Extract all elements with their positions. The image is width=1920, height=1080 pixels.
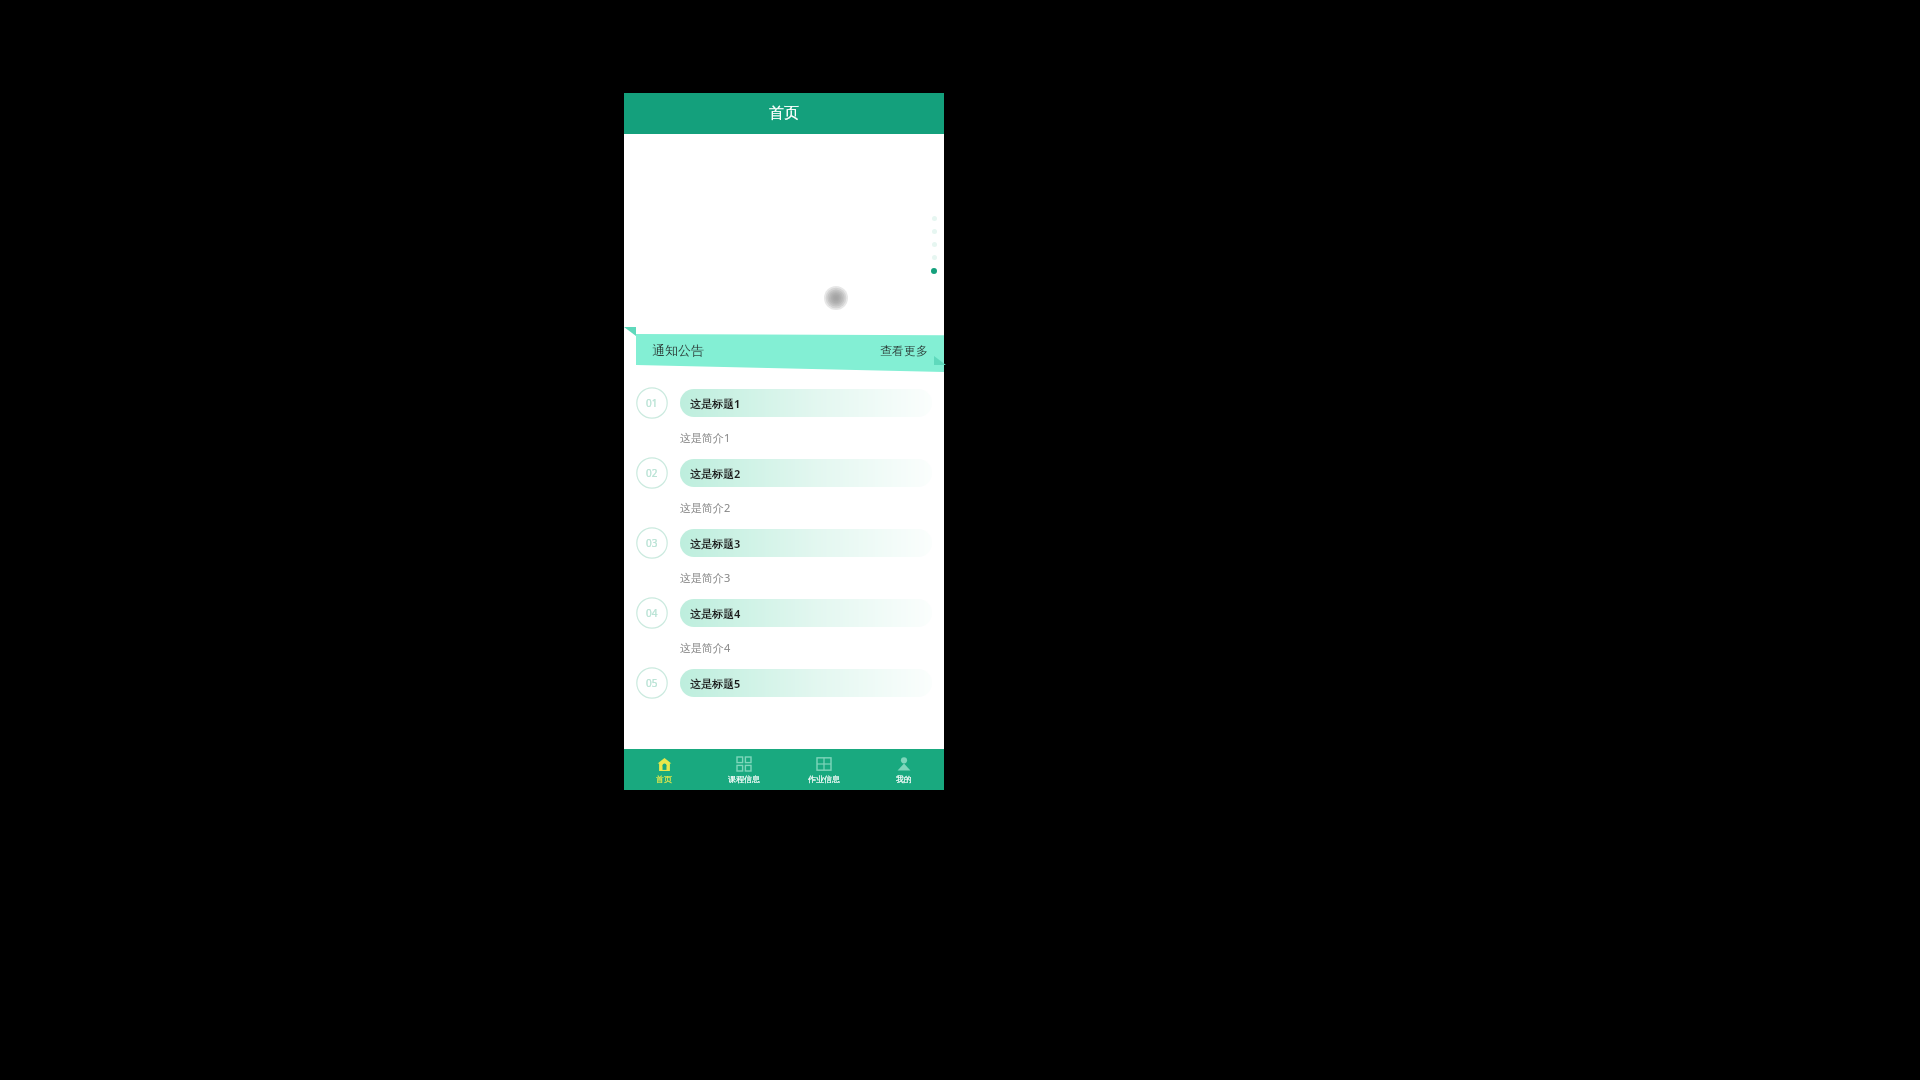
staticText: 03: [646, 536, 658, 550]
button[interactable]: 课程信息: [704, 749, 784, 790]
staticText: 02: [646, 466, 658, 480]
button[interactable]: 我的: [864, 749, 944, 790]
button[interactable]: 04: [624, 597, 944, 667]
staticText: 这是简介1: [680, 430, 731, 445]
staticText: 首页: [769, 104, 799, 123]
staticText: 这是标题1: [690, 396, 741, 411]
button[interactable]: 05: [624, 667, 944, 699]
staticText: 这是标题4: [690, 606, 741, 621]
staticText: 我的: [896, 774, 912, 784]
button[interactable]: 作业信息: [784, 749, 864, 790]
staticText: 这是标题3: [690, 536, 741, 551]
button[interactable]: 02: [624, 457, 944, 527]
staticText: 这是简介3: [680, 570, 731, 585]
staticText: 04: [646, 606, 658, 620]
button[interactable]: 查看更多: [880, 343, 928, 358]
staticText: 这是标题5: [690, 676, 741, 691]
staticText: 01: [646, 396, 658, 410]
button[interactable]: 通知公告: [624, 327, 944, 373]
button[interactable]: 03: [624, 527, 944, 597]
staticText: 这是标题2: [690, 466, 741, 481]
staticText: 课程信息: [728, 774, 760, 784]
button[interactable]: 01: [624, 387, 944, 457]
staticText: 查看更多: [880, 343, 928, 358]
staticText: 这是简介2: [680, 500, 731, 515]
staticText: 05: [646, 676, 658, 690]
staticText: 首页: [656, 774, 672, 784]
staticText: 通知公告: [652, 342, 704, 358]
button[interactable]: 首页: [624, 749, 704, 790]
staticText: 这是简介4: [680, 640, 731, 655]
staticText: 作业信息: [808, 774, 840, 784]
